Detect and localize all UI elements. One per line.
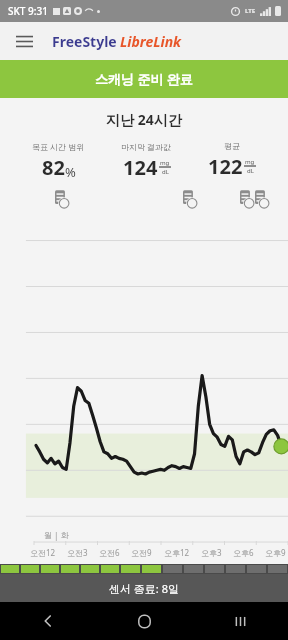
staticText: 화 [61,530,69,540]
staticText: % [65,163,76,181]
button[interactable]: 평균 [204,141,260,180]
staticText: 122 [208,153,243,180]
staticText: FreeStyle [52,32,117,51]
button[interactable]: Home [96,602,192,640]
button[interactable]: 목표 시간 범위 [28,141,89,181]
staticText: | [54,530,59,541]
staticText: 목표 시간 범위 [32,141,85,152]
staticText: 월 [44,530,52,540]
button[interactable]: 센서 종료: 8일 [0,564,288,602]
staticText: dL [162,168,169,176]
staticText: 스캐닝 준비 완료 [95,70,193,88]
staticText: 124 [123,154,158,181]
staticText: mg [245,158,255,166]
button[interactable]: Note entry [183,189,199,211]
button[interactable]: Note entry [255,189,271,211]
staticText: 오후3 [201,547,222,558]
staticText: 오전9 [131,547,152,558]
staticText: mg [160,159,170,167]
staticText: SKT 9:31 [8,4,48,18]
button[interactable]: Menu [8,25,40,57]
button[interactable]: Recent apps [192,602,288,640]
staticText: 오전3 [67,547,88,558]
button[interactable]: 스캐닝 준비 완료 [0,60,288,98]
staticText: dL [247,167,254,175]
staticText: 오후9 [265,547,286,558]
staticText: 마지막 결과값 [121,141,172,152]
button[interactable]: Note entry [240,189,256,211]
staticText: 오전12 [30,547,56,558]
staticText: 오후6 [233,547,254,558]
staticText: LibreLink [120,32,182,51]
button[interactable]: Note entry [55,189,71,211]
staticText: 오후12 [164,547,190,558]
button[interactable]: 마지막 결과값 [117,141,176,181]
staticText: 평균 [224,141,240,151]
staticText: 오전6 [99,547,120,558]
staticText: 센서 종료: 8일 [109,581,179,596]
staticText: LTE [245,7,256,15]
staticText: 82 [42,154,65,181]
button[interactable]: Back [0,602,96,640]
staticText: 지난 24시간 [106,110,182,129]
